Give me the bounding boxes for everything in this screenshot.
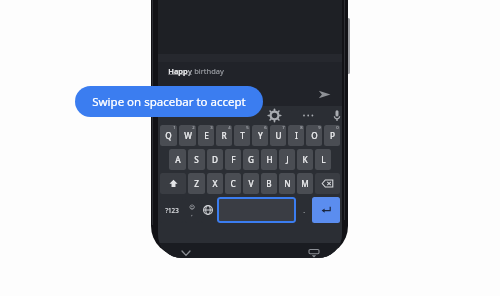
button[interactable]: C	[225, 173, 241, 194]
staticText: Happ	[168, 66, 188, 76]
staticText: O	[311, 130, 318, 141]
button[interactable]: F	[225, 149, 241, 170]
staticText: ,	[191, 210, 193, 217]
staticText: A	[175, 154, 181, 165]
button[interactable]: N	[279, 173, 295, 194]
staticText: 9	[318, 125, 321, 131]
button[interactable]: Happ	[158, 62, 342, 115]
staticText: E	[204, 130, 209, 141]
button[interactable]: I	[288, 125, 304, 146]
button[interactable]: H	[261, 149, 277, 170]
button[interactable]: Change language	[201, 197, 215, 223]
staticText: G	[248, 154, 254, 165]
staticText: 1	[173, 125, 176, 131]
button[interactable]: U	[270, 125, 286, 146]
button[interactable]: Settings	[266, 107, 282, 123]
staticText: J	[286, 154, 289, 165]
button[interactable]: A	[169, 149, 186, 170]
staticText: Y	[258, 130, 263, 141]
staticText: P	[330, 130, 335, 141]
button[interactable]: Shift	[160, 173, 186, 194]
button[interactable]: G	[243, 149, 259, 170]
button[interactable]: K	[297, 149, 313, 170]
staticText: D	[212, 154, 218, 165]
button[interactable]: More options	[299, 107, 315, 123]
button[interactable]: Comma	[185, 197, 199, 223]
button[interactable]: V	[243, 173, 259, 194]
staticText: ☺	[189, 204, 195, 210]
staticText: 6	[264, 125, 267, 131]
staticText: y	[188, 66, 192, 76]
button[interactable]: L	[315, 149, 331, 170]
button[interactable]: Z	[188, 173, 205, 194]
staticText: R	[221, 130, 227, 141]
button[interactable]: Space	[217, 197, 296, 223]
staticText: I	[295, 130, 298, 141]
button[interactable]: ?123	[160, 197, 183, 223]
button[interactable]: J	[279, 149, 295, 170]
button[interactable]: S	[188, 149, 205, 170]
staticText: ?123	[165, 206, 179, 214]
button[interactable]: P	[324, 125, 340, 146]
button[interactable]: Y	[252, 125, 268, 146]
button[interactable]: Backspace	[315, 173, 340, 194]
button[interactable]: D	[207, 149, 223, 170]
staticText: T	[240, 130, 245, 141]
staticText: .	[303, 206, 305, 215]
staticText: 8	[300, 125, 303, 131]
staticText: 7	[282, 125, 285, 131]
button[interactable]: Hide keyboard	[306, 245, 322, 258]
staticText: 4	[228, 125, 231, 131]
button[interactable]: Voice input	[332, 107, 342, 123]
staticText: Z	[194, 178, 199, 189]
button[interactable]: T	[234, 125, 250, 146]
staticText: 2	[192, 125, 195, 131]
staticText: Swipe on spacebar to accept	[92, 94, 246, 110]
staticText: 3	[210, 125, 213, 131]
button[interactable]: E	[198, 125, 214, 146]
button[interactable]: W	[179, 125, 196, 146]
staticText: K	[302, 154, 308, 165]
button[interactable]: Swipe on spacebar to accept	[75, 86, 263, 117]
staticText: 5	[246, 125, 249, 131]
staticText: V	[248, 178, 254, 189]
button[interactable]: Q	[160, 125, 177, 146]
button[interactable]: Send	[314, 84, 334, 104]
button[interactable]: M	[297, 173, 313, 194]
staticText: U	[275, 130, 282, 141]
staticText: H	[266, 154, 273, 165]
staticText: X	[212, 178, 218, 189]
staticText: L	[321, 154, 326, 165]
staticText: B	[266, 178, 272, 189]
staticText: S	[194, 154, 199, 165]
button[interactable]: Period	[298, 197, 310, 223]
staticText: birthday	[194, 66, 224, 76]
staticText: M	[301, 178, 309, 189]
staticText: W	[184, 130, 192, 141]
staticText: Q	[165, 130, 172, 141]
button[interactable]: Collapse	[178, 245, 194, 258]
staticText: C	[230, 178, 236, 189]
staticText: N	[284, 178, 291, 189]
button[interactable]: B	[261, 173, 277, 194]
staticText: 0	[336, 125, 339, 131]
staticText: F	[231, 154, 236, 165]
button[interactable]: X	[207, 173, 223, 194]
button[interactable]: R	[216, 125, 232, 146]
button[interactable]: O	[306, 125, 322, 146]
button[interactable]: Enter	[312, 197, 340, 223]
